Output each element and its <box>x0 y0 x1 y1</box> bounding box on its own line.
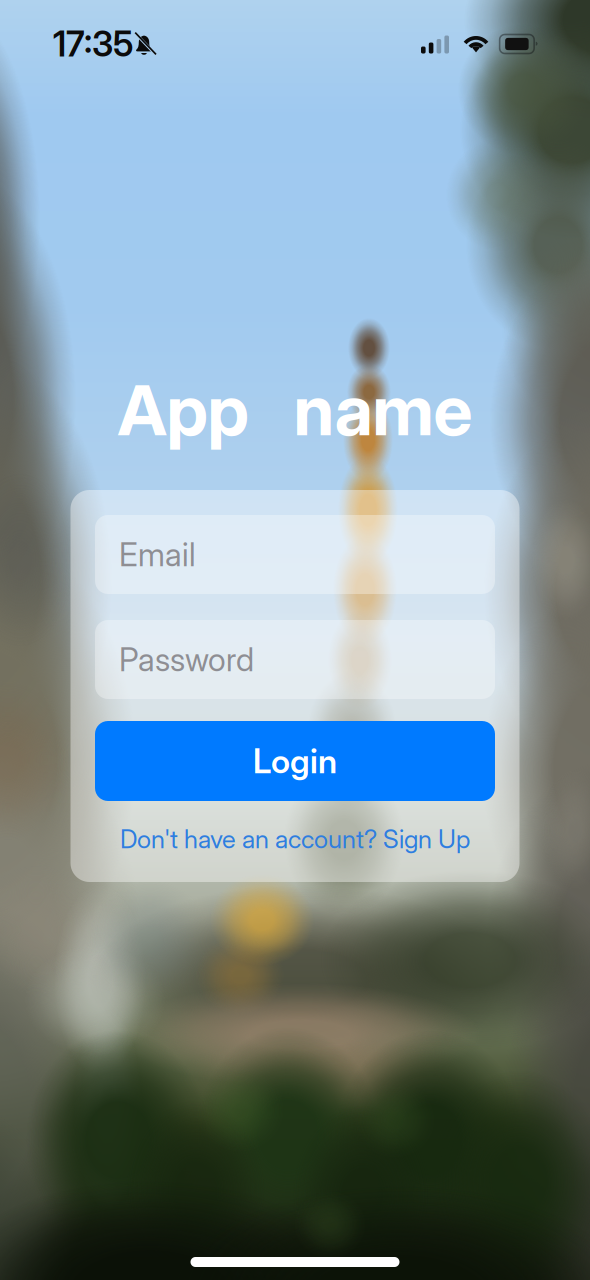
staticText: App name <box>117 368 472 452</box>
button[interactable]: Don't have an account? Sign Up <box>95 821 495 857</box>
staticText: 17:35 <box>53 23 133 65</box>
staticText: Password <box>119 640 254 679</box>
staticText: Login <box>253 741 337 781</box>
button[interactable]: Login <box>95 721 495 801</box>
staticText: Email <box>119 535 196 574</box>
staticText: Don't have an account? Sign Up <box>120 824 470 854</box>
